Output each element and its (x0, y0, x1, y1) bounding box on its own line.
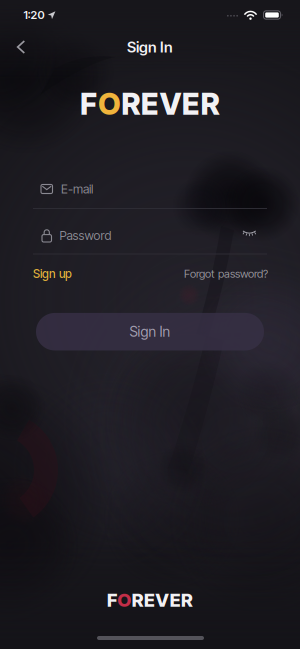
button[interactable]: Forgot password? (184, 267, 268, 280)
staticText: R (201, 86, 220, 122)
button[interactable]: Show password (238, 224, 261, 243)
staticText: O (98, 86, 121, 122)
staticText: E (141, 86, 159, 122)
staticText: R (181, 589, 193, 611)
staticText: E (182, 86, 200, 122)
staticText: 1:20 (23, 8, 44, 22)
staticText: Sign up (33, 267, 72, 281)
staticText: V (155, 589, 169, 611)
button[interactable]: E-mail (33, 176, 267, 202)
button[interactable]: Back (16, 40, 25, 54)
button[interactable]: Sign In (36, 313, 264, 350)
staticText: E (144, 589, 155, 611)
staticText: Sign In (129, 323, 170, 340)
staticText: Forgot password? (184, 267, 268, 280)
staticText: E (170, 589, 181, 611)
staticText: Sign In (127, 38, 173, 56)
staticText: E-mail (61, 182, 93, 196)
staticText: R (132, 589, 144, 611)
staticText: F (80, 86, 97, 122)
button[interactable]: Password (33, 222, 233, 248)
staticText: V (160, 86, 182, 122)
button[interactable]: Sign up (33, 267, 72, 281)
staticText: F (107, 589, 117, 611)
staticText: O (117, 589, 131, 611)
staticText: R (121, 86, 140, 122)
staticText: Password (59, 228, 111, 243)
